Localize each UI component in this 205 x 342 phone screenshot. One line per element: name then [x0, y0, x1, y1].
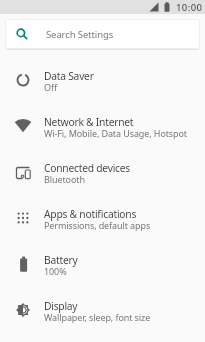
button[interactable]: Battery [0, 241, 205, 287]
button[interactable]: Search Settings [5, 19, 200, 49]
staticText: Off [44, 81, 58, 93]
staticText: Wi-Fi, Mobile, Data Usage, Hotspot [44, 127, 188, 139]
button[interactable]: Data Saver [0, 57, 205, 103]
button[interactable]: Connected devices [0, 149, 205, 195]
staticText: Search Settings [46, 28, 114, 41]
staticText: Battery [44, 253, 78, 267]
staticText: Wallpaper, sleep, font size [44, 311, 151, 323]
staticText: Permissions, default apps [44, 219, 151, 231]
button[interactable]: Display [0, 287, 205, 333]
button[interactable]: Apps & notifications [0, 195, 205, 241]
staticText: Bluetooth [44, 173, 85, 185]
staticText: Network & Internet [44, 115, 134, 129]
staticText: Data Saver [44, 69, 94, 83]
staticText: 100% [44, 265, 67, 277]
staticText: Connected devices [44, 161, 131, 175]
staticText: Display [44, 299, 78, 313]
button[interactable]: Network & Internet [0, 103, 205, 149]
staticText: 10:00 [176, 1, 203, 14]
staticText: Apps & notifications [44, 207, 137, 221]
